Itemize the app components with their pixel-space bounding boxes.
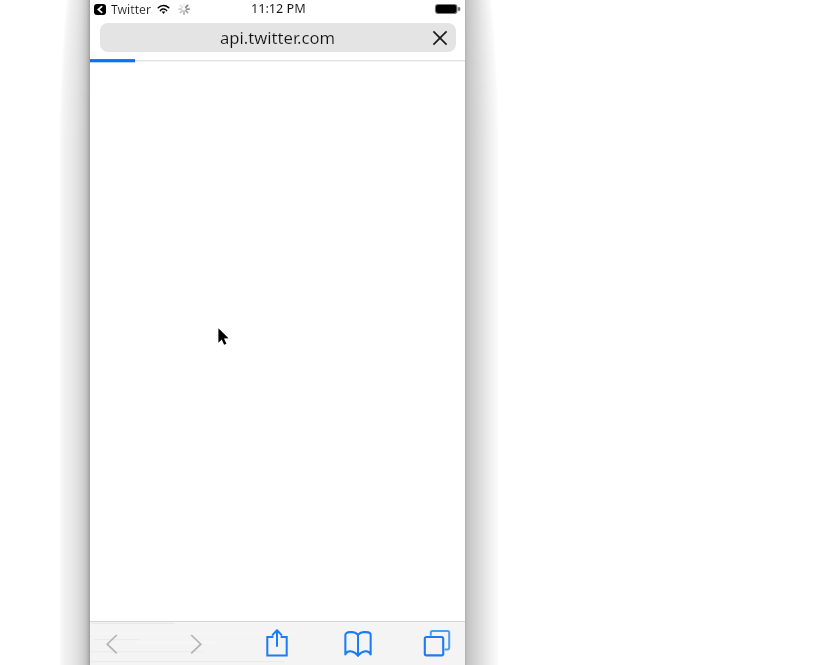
staticText: Twitter [111, 1, 151, 18]
staticText: 11:12 PM [251, 0, 306, 17]
button[interactable]: Back [95, 627, 129, 661]
staticText: api.twitter.com [220, 26, 336, 49]
button[interactable]: Tabs [420, 627, 454, 661]
button[interactable]: Close [430, 28, 450, 48]
button[interactable]: Forward [179, 627, 213, 661]
button[interactable]: Back to Twitter [94, 4, 106, 15]
button[interactable]: Bookmarks [341, 627, 375, 661]
button[interactable]: Share [260, 627, 294, 661]
button[interactable]: api.twitter.com [100, 23, 456, 52]
